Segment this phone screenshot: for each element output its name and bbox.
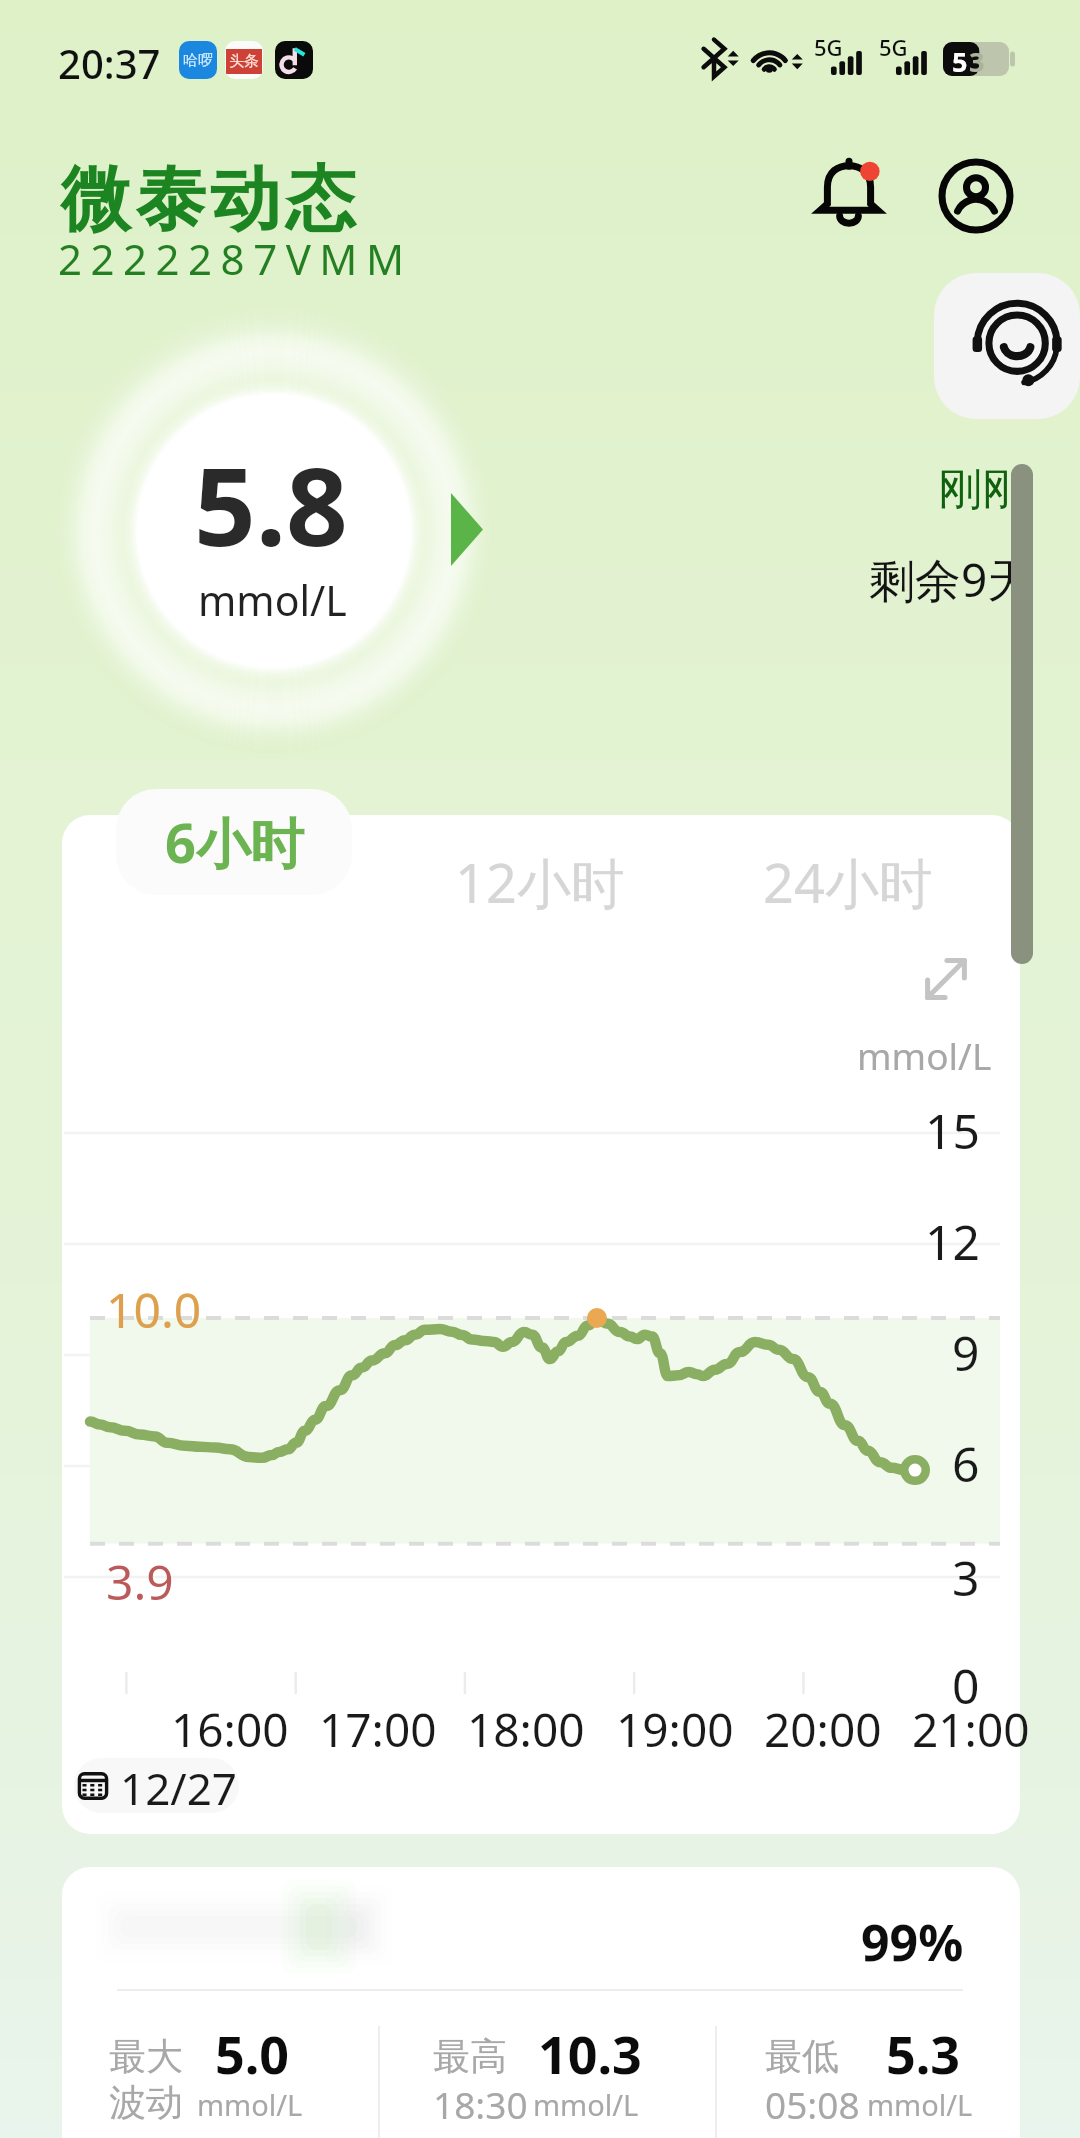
staticText: 21:00 bbox=[912, 1698, 1030, 1761]
button[interactable]: 6小时 bbox=[116, 789, 352, 895]
staticText: 24小时 bbox=[763, 845, 933, 919]
staticText: 0 bbox=[952, 1653, 980, 1718]
staticText: 最大 bbox=[109, 2033, 183, 2080]
button[interactable]: Profile bbox=[926, 146, 1026, 246]
staticText: 16:00 bbox=[171, 1698, 289, 1761]
staticText: 5.3 bbox=[886, 2018, 961, 2089]
staticText: 10.3 bbox=[538, 2018, 642, 2089]
staticText: 18:00 bbox=[467, 1698, 585, 1761]
staticText: 波动 bbox=[109, 2079, 183, 2126]
staticText: 99% bbox=[861, 1908, 964, 1976]
staticText: 剩余9天 bbox=[869, 548, 1034, 611]
staticText: 5 bbox=[952, 43, 968, 77]
staticText: 5G bbox=[879, 32, 908, 62]
staticText: 05:08 bbox=[765, 2079, 860, 2129]
staticText: 5G bbox=[814, 32, 843, 62]
staticText: 15 bbox=[925, 1098, 980, 1163]
button[interactable]: 24小时 bbox=[738, 832, 958, 932]
staticText: 6 bbox=[952, 1431, 980, 1496]
staticText: 最高 bbox=[433, 2033, 507, 2080]
staticText: 5.8 bbox=[194, 431, 348, 578]
staticText: mmol/L bbox=[533, 2085, 639, 2124]
button[interactable]: Expand chart bbox=[902, 935, 990, 1023]
staticText: 3 bbox=[952, 1545, 980, 1610]
staticText: mmol/L bbox=[197, 2085, 303, 2124]
staticText: 12小时 bbox=[455, 845, 625, 919]
staticText: 微泰动态 bbox=[58, 156, 358, 244]
button[interactable]: Notifications bbox=[799, 143, 899, 243]
staticText: 头条 bbox=[229, 52, 259, 71]
staticText: 20:00 bbox=[764, 1698, 882, 1761]
staticText: 哈啰 bbox=[183, 51, 213, 70]
staticText: mmol/L bbox=[857, 1030, 992, 1080]
staticText: 2222287VMM bbox=[58, 230, 413, 287]
staticText: 18:30 bbox=[433, 2079, 528, 2129]
button[interactable]: 12小时 bbox=[430, 832, 650, 932]
staticText: 6小时 bbox=[165, 805, 304, 879]
staticText: 10.0 bbox=[106, 1277, 202, 1342]
staticText: 9 bbox=[952, 1320, 980, 1385]
staticText: 3 bbox=[969, 43, 985, 77]
staticText: 17:00 bbox=[319, 1698, 437, 1761]
staticText: 12/27 bbox=[120, 1758, 238, 1813]
staticText: 刚刚 bbox=[938, 462, 1026, 517]
staticText: mmol/L bbox=[867, 2085, 973, 2124]
staticText: 最低 bbox=[765, 2033, 839, 2080]
button[interactable]: Customer service bbox=[934, 273, 1080, 419]
staticText: mmol/L bbox=[198, 572, 347, 628]
staticText: 19:00 bbox=[616, 1698, 734, 1761]
staticText: 3.9 bbox=[106, 1549, 174, 1614]
staticText: 20:37 bbox=[58, 36, 161, 90]
button[interactable]: 12/27 bbox=[74, 1758, 239, 1813]
staticText: 12 bbox=[925, 1209, 980, 1274]
staticText: 5.0 bbox=[215, 2018, 290, 2089]
